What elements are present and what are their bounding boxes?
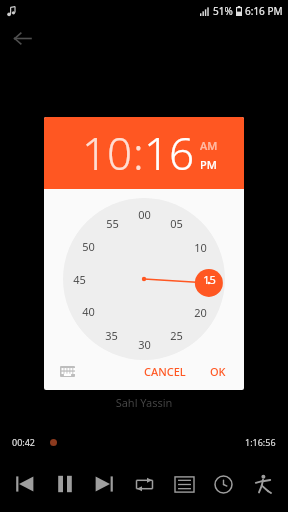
button[interactable]: 10	[82, 123, 133, 183]
staticText: 02. Al-Baqarah (سورة البقرة)	[0, 371, 288, 389]
staticText: 40	[82, 304, 95, 319]
staticText: 6:16 PM	[245, 4, 283, 18]
staticText: 00	[138, 207, 151, 222]
button[interactable]: Repeat	[127, 467, 161, 501]
staticText: 55	[106, 216, 119, 231]
button[interactable]: AM	[200, 138, 218, 153]
button[interactable]: Sleep timer	[206, 467, 240, 501]
staticText: 15	[203, 272, 216, 287]
button[interactable]: CANCEL	[138, 358, 192, 385]
staticText: 35	[105, 328, 118, 343]
staticText: 00:42	[12, 436, 36, 448]
button[interactable]: Previous	[8, 467, 42, 501]
staticText: 30	[138, 337, 151, 352]
button[interactable]: Next	[87, 467, 121, 501]
staticText: 20	[194, 305, 207, 320]
staticText: 45	[73, 272, 86, 287]
button[interactable]: 16	[144, 123, 195, 183]
staticText: CANCEL	[144, 364, 186, 379]
staticText: 05	[170, 216, 183, 231]
button[interactable]: Pause	[48, 467, 82, 501]
button[interactable]: Switch to keyboard input	[54, 358, 80, 384]
button[interactable]: OK	[204, 358, 232, 385]
staticText: OK	[210, 364, 226, 379]
staticText: Sahl Yassin	[0, 395, 288, 410]
staticText: 1:16:56	[245, 436, 276, 448]
button[interactable]: Playlist	[167, 467, 201, 501]
button[interactable]: Back	[8, 24, 36, 52]
staticText: 10	[194, 240, 207, 255]
staticText: :	[133, 123, 144, 183]
staticText: 51%	[213, 4, 233, 18]
button[interactable]: Shake action	[246, 467, 280, 501]
staticText: 25	[170, 328, 183, 343]
staticText: 50	[82, 239, 95, 254]
button[interactable]: PM	[200, 157, 217, 172]
